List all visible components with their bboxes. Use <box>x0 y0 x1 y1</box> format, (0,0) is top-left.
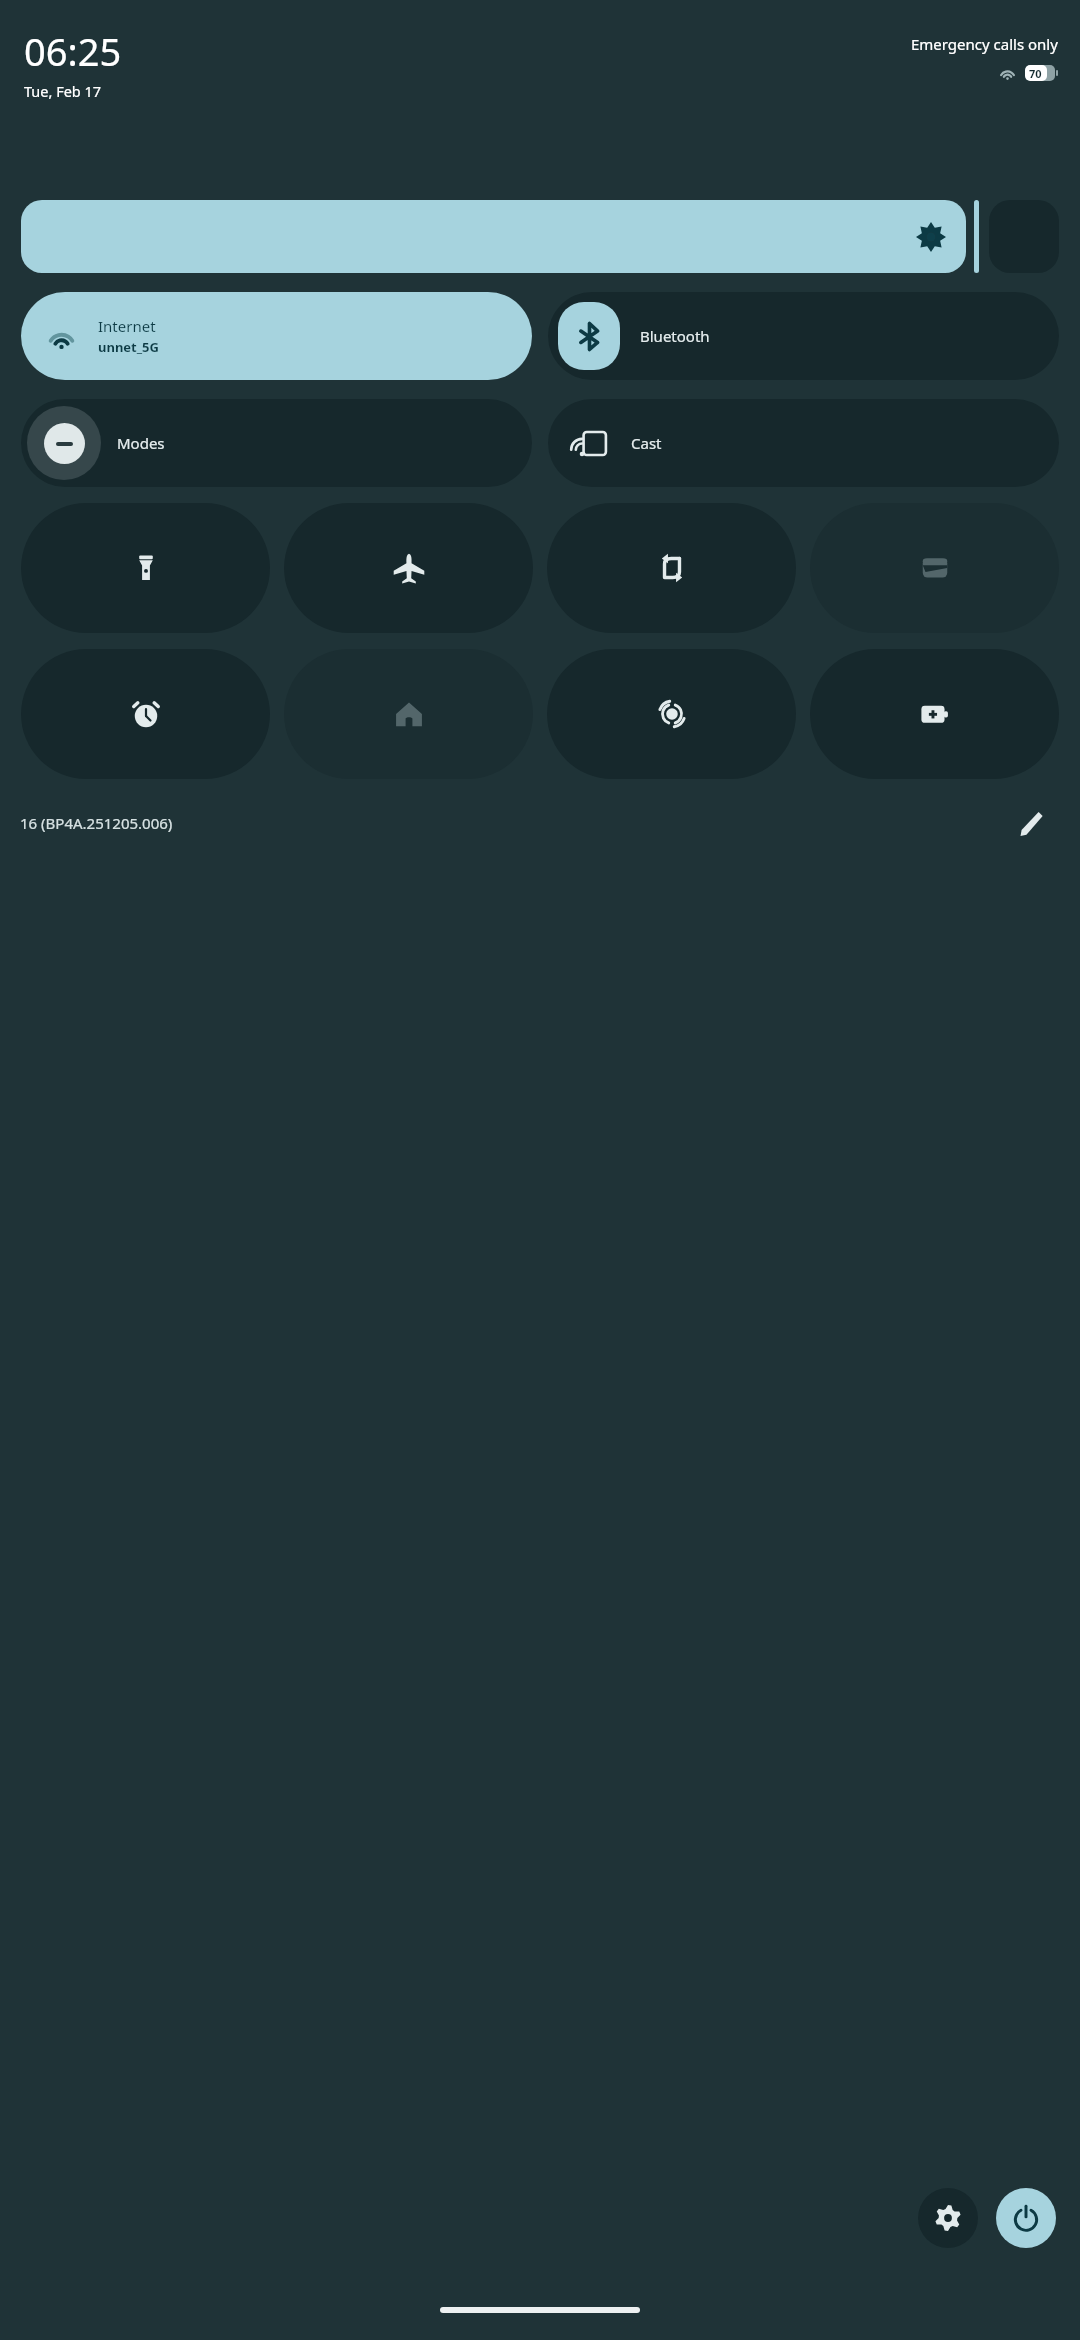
button[interactable]: Edit tiles <box>1010 803 1050 843</box>
staticText: 06:25 <box>24 25 122 77</box>
button[interactable]: Internet <box>21 292 532 380</box>
button[interactable]: Wallet <box>810 503 1059 633</box>
button[interactable]: Bluetooth <box>548 292 1059 380</box>
button[interactable]: Home <box>284 649 533 779</box>
staticText: 70 <box>1029 66 1042 81</box>
button[interactable]: Battery Saver <box>810 649 1059 779</box>
staticText: Cast <box>631 433 662 453</box>
button[interactable]: Alarm <box>21 649 270 779</box>
button[interactable]: Power <box>996 2188 1056 2248</box>
button[interactable]: Modes <box>21 399 532 487</box>
staticText: 16 (BP4A.251205.006) <box>20 813 173 833</box>
button[interactable]: Cast <box>548 399 1059 487</box>
staticText: Internet <box>98 316 156 336</box>
button[interactable]: Settings <box>918 2188 978 2248</box>
button[interactable]: Airplane mode <box>284 503 533 633</box>
staticText: unnet_5G <box>98 338 159 356</box>
button[interactable]: Flashlight <box>21 503 270 633</box>
staticText: Tue, Feb 17 <box>24 81 102 101</box>
staticText: Emergency calls only <box>911 34 1058 54</box>
staticText: Modes <box>117 433 165 453</box>
button[interactable] <box>21 200 966 273</box>
button[interactable]: Auto-rotate <box>547 503 796 633</box>
button[interactable]: Nearby Share <box>547 649 796 779</box>
staticText: Bluetooth <box>640 326 710 346</box>
